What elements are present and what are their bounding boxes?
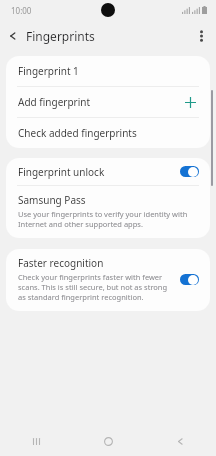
button[interactable]: Toggle on bbox=[180, 274, 199, 285]
staticText: Fingerprint unlock bbox=[18, 165, 180, 179]
button[interactable]: Toggle on bbox=[180, 166, 199, 177]
button[interactable]: Fingerprint unlock bbox=[6, 158, 210, 185]
button[interactable]: Recent apps bbox=[0, 426, 72, 456]
staticText: Use your fingerprints to verify your ide… bbox=[18, 209, 198, 229]
button[interactable]: Check added fingerprints bbox=[6, 118, 210, 148]
button[interactable]: More options bbox=[188, 23, 214, 49]
staticText: Samsung Pass bbox=[18, 193, 86, 207]
button[interactable]: Home bbox=[72, 426, 144, 456]
button[interactable]: Back bbox=[144, 426, 216, 456]
staticText: Add fingerprint bbox=[18, 95, 182, 109]
button[interactable]: Add fingerprint bbox=[6, 87, 210, 117]
staticText: Check your fingerprints faster with fewe… bbox=[18, 272, 172, 302]
button[interactable]: Samsung Pass bbox=[6, 186, 210, 238]
staticText: Fingerprints bbox=[26, 28, 95, 44]
staticText: Faster recognition bbox=[18, 256, 104, 270]
button[interactable]: Faster recognition bbox=[6, 249, 210, 311]
staticText: 10:00 bbox=[11, 5, 32, 16]
staticText: Check added fingerprints bbox=[18, 126, 198, 140]
button[interactable]: Back bbox=[0, 23, 26, 49]
button[interactable]: Fingerprint 1 bbox=[6, 56, 210, 86]
staticText: Fingerprint 1 bbox=[18, 64, 198, 78]
